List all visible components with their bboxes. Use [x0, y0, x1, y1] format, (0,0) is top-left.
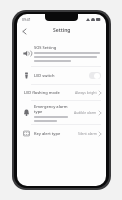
staticText: LED switch: [34, 73, 89, 78]
staticText: Emergency alarm type: [34, 104, 72, 114]
button[interactable]: Toggle LED switch: [89, 72, 101, 79]
staticText: LED flashing mode: [24, 90, 75, 95]
button[interactable]: LED switch: [17, 67, 106, 84]
button[interactable]: Key alert type: [17, 125, 106, 142]
button[interactable]: SOS Setting: [17, 40, 106, 66]
staticText: Silent alarm: [78, 131, 97, 136]
button[interactable]: Back: [19, 26, 29, 36]
staticText: Key alert type: [34, 131, 78, 136]
staticText: 09:41: [22, 17, 31, 22]
staticText: Audible alarm: [74, 110, 97, 115]
staticText: SOS Setting: [34, 45, 57, 50]
button[interactable]: LED flashing mode: [17, 85, 106, 100]
staticText: Setting: [53, 27, 71, 34]
staticText: Always bright: [75, 90, 97, 95]
button[interactable]: Emergency alarm type: [17, 101, 106, 124]
